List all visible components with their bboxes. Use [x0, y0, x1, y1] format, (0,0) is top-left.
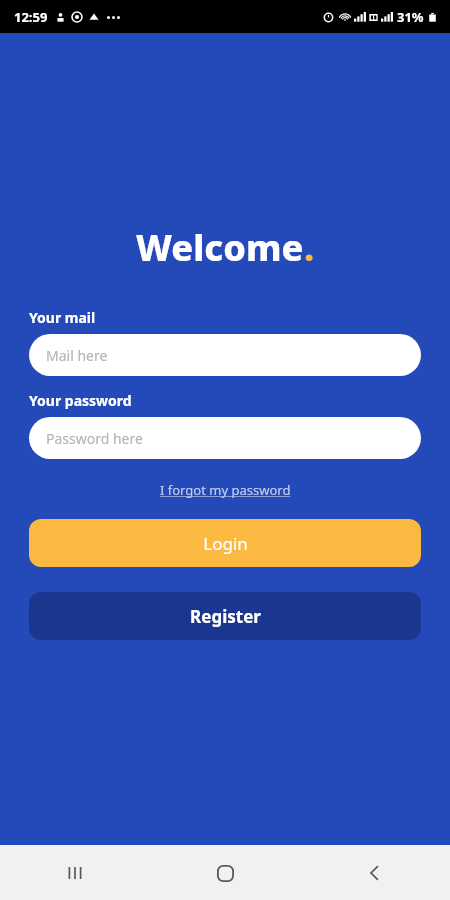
staticText: Login — [203, 532, 248, 555]
button[interactable]: I forgot my password — [156, 479, 295, 501]
button[interactable]: Back — [348, 846, 402, 900]
staticText: Your mail — [29, 308, 96, 327]
button[interactable]: Recent apps — [48, 846, 102, 900]
staticText: Welcome — [136, 223, 304, 272]
button[interactable]: Password here — [29, 417, 421, 459]
staticText: Your password — [29, 391, 132, 410]
button[interactable]: Login — [29, 519, 421, 567]
staticText: I forgot my password — [160, 481, 291, 499]
button[interactable]: Home — [198, 846, 252, 900]
button[interactable]: Mail here — [29, 334, 421, 376]
button[interactable]: Register — [29, 592, 421, 640]
staticText: 31% — [397, 8, 424, 26]
staticText: Mail here — [46, 346, 108, 365]
staticText: . — [304, 223, 315, 272]
staticText: Password here — [46, 429, 143, 448]
staticText: 12:59 — [14, 8, 48, 26]
staticText: Register — [190, 605, 261, 628]
